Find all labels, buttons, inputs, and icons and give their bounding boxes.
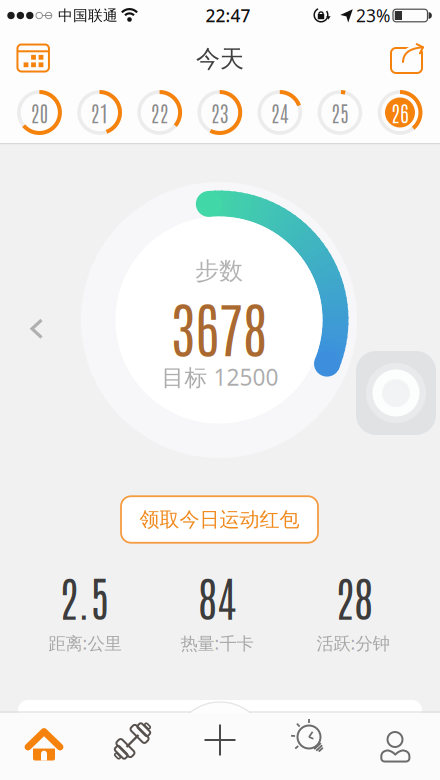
staticText: 23 xyxy=(211,99,229,126)
button[interactable]: Add xyxy=(184,704,256,776)
button[interactable]: 25 xyxy=(316,88,364,136)
staticText: 距离:公里 xyxy=(48,631,121,654)
staticText: 中国联通 xyxy=(58,6,118,24)
staticText: 24 xyxy=(271,99,289,126)
button[interactable]: 23 xyxy=(196,88,244,136)
staticText: 2.5 xyxy=(59,566,109,626)
staticText: 22:47 xyxy=(205,4,250,27)
button[interactable]: 领取今日运动红包 xyxy=(121,496,318,543)
button[interactable]: Calendar xyxy=(9,33,57,81)
staticText: 目标 12500 xyxy=(161,362,278,392)
staticText: 22 xyxy=(151,99,169,126)
button[interactable]: Workouts xyxy=(104,713,160,769)
button[interactable]: Home xyxy=(16,718,72,774)
staticText: 21 xyxy=(90,99,108,126)
staticText: 26 xyxy=(391,99,409,126)
button[interactable]: Floating widget xyxy=(352,349,440,437)
button[interactable]: Profile xyxy=(368,716,424,772)
button[interactable]: 21 xyxy=(75,88,123,136)
staticText: 热量:千卡 xyxy=(180,631,253,654)
button[interactable]: Discover xyxy=(280,712,336,768)
button[interactable]: 24 xyxy=(256,88,304,136)
staticText: 23% xyxy=(356,4,390,27)
button[interactable]: Share xyxy=(382,36,430,84)
staticText: 活跃:分钟 xyxy=(316,631,389,654)
staticText: 84 xyxy=(198,566,236,626)
staticText: 领取今日运动红包 xyxy=(139,507,299,532)
staticText: 20 xyxy=(30,99,48,126)
staticText: 今天 xyxy=(196,44,244,74)
staticText: 25 xyxy=(331,99,349,126)
staticText: 28 xyxy=(335,566,373,626)
button[interactable]: 22 xyxy=(136,88,184,136)
button[interactable]: Previous day xyxy=(15,306,59,350)
staticText: 步数 xyxy=(195,256,243,286)
staticText: 3678 xyxy=(171,288,267,364)
button[interactable]: 26 xyxy=(376,88,424,136)
button[interactable]: 20 xyxy=(15,88,63,136)
